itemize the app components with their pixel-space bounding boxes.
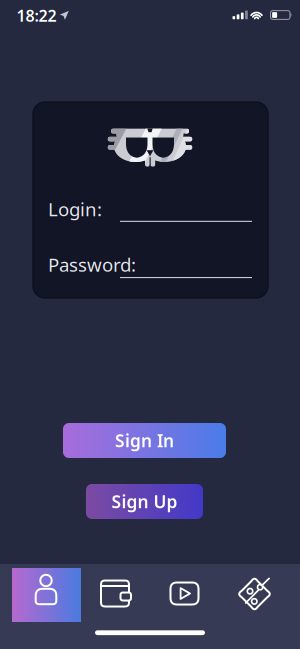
- button[interactable]: [81, 568, 150, 622]
- button[interactable]: [120, 254, 252, 280]
- button[interactable]: [150, 568, 219, 622]
- button[interactable]: [219, 568, 288, 622]
- button[interactable]: [12, 568, 81, 622]
- staticText: Sign Up: [111, 490, 177, 513]
- button[interactable]: Sign In: [63, 423, 226, 458]
- button[interactable]: Sign Up: [86, 484, 203, 519]
- staticText: Sign In: [115, 429, 174, 452]
- staticText: Password:: [48, 252, 136, 277]
- button[interactable]: [120, 198, 252, 224]
- staticText: Login:: [48, 197, 102, 221]
- staticText: 18:22: [16, 5, 56, 26]
